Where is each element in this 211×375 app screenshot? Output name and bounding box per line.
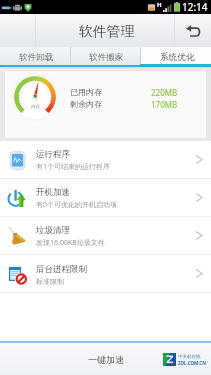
staticText: 开机加速 — [36, 187, 70, 198]
staticText: 发现16.00KB垃圾文件 — [36, 238, 105, 248]
button[interactable]: 垃圾清理 — [0, 217, 211, 254]
button[interactable]: Back — [174, 14, 211, 47]
button[interactable]: 软件卸载 — [0, 47, 70, 64]
button[interactable]: 一键加速 — [0, 343, 211, 375]
staticText: 软件搬家 — [89, 52, 124, 63]
staticText: 170MB — [151, 99, 178, 110]
staticText: 已用内存 — [70, 87, 106, 97]
button[interactable]: 软件搬家 — [71, 47, 140, 64]
staticText: 内存 — [31, 104, 40, 110]
button[interactable]: 后台进程限制 — [0, 255, 211, 292]
staticText: 软件管理 — [79, 23, 135, 40]
staticText: 一键加速 — [88, 354, 124, 365]
staticText: 软件卸载 — [19, 52, 54, 63]
staticText: 后台进程限制 — [36, 264, 87, 275]
staticText: 有1个可结束的运行程序 — [36, 162, 111, 172]
staticText: 12:14 — [182, 0, 208, 14]
staticText: 垃圾清理 — [36, 225, 70, 236]
staticText: H — [157, 1, 162, 9]
staticText: 220MB — [151, 87, 178, 98]
button[interactable]: 系统优化 — [141, 47, 211, 64]
staticText: 剩余内存 — [70, 99, 106, 109]
button[interactable]: 开机加速 — [0, 179, 211, 216]
staticText: 运行程序 — [36, 149, 70, 160]
button[interactable]: 运行程序 — [0, 141, 211, 178]
staticText: 中关村在线 — [178, 354, 201, 360]
staticText: 标准限制 — [36, 277, 64, 286]
staticText: 系统优化 — [160, 52, 195, 63]
staticText: ZOL.COM.CN — [178, 360, 206, 366]
staticText: 有0个可优化的开机启动项 — [36, 200, 118, 210]
